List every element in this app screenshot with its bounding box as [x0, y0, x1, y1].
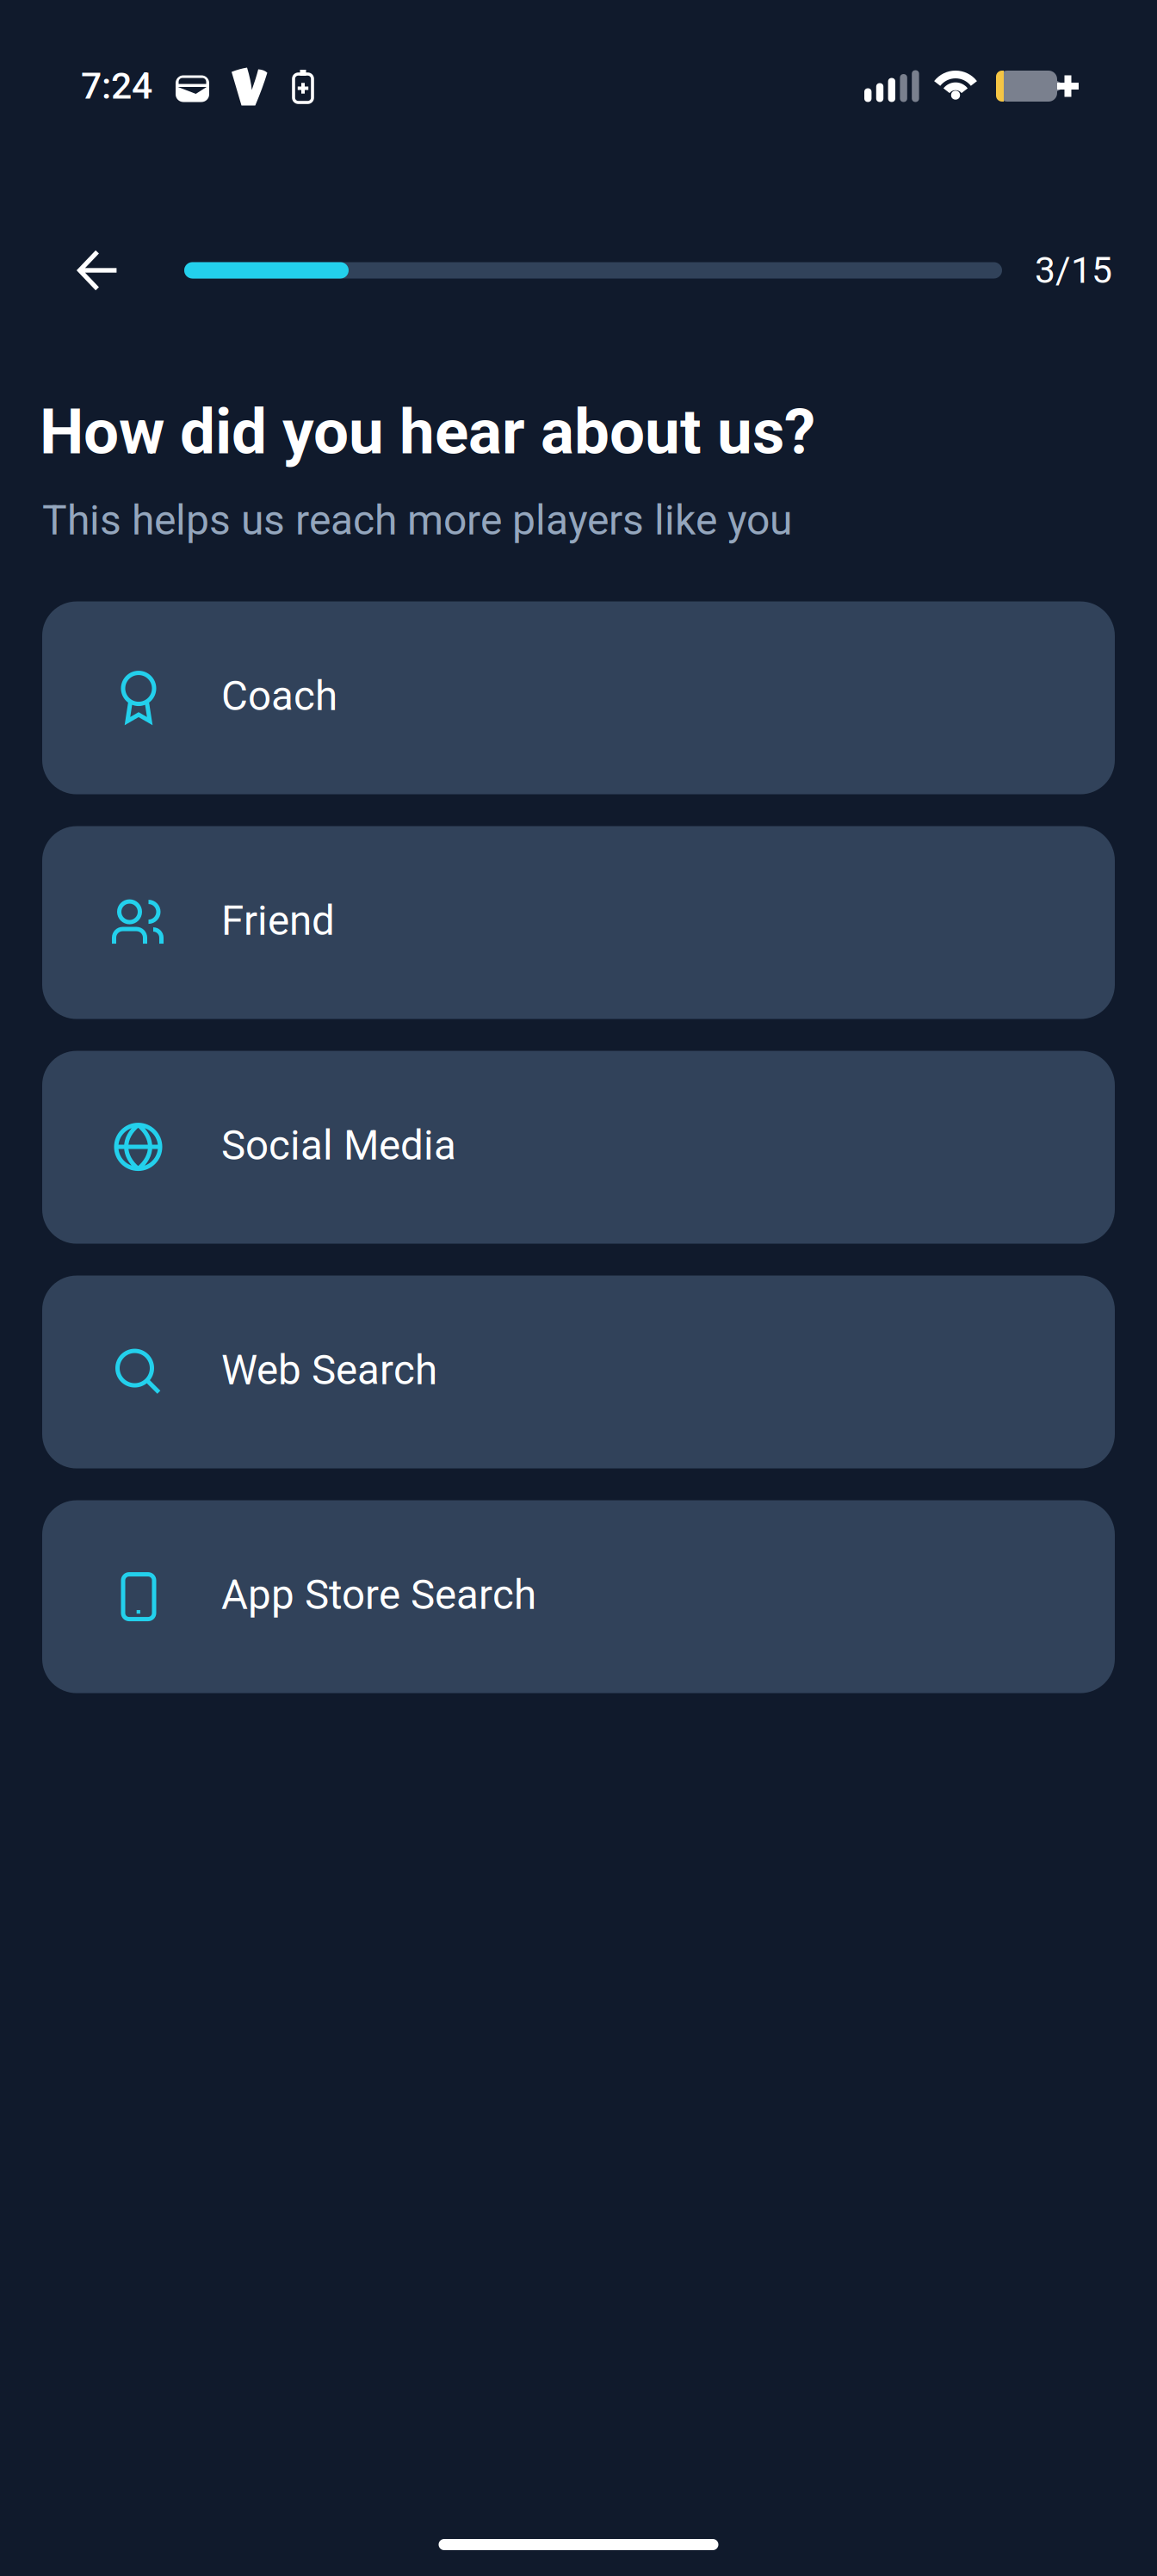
staticText: Social Media — [221, 1122, 456, 1170]
staticText: 7:24 — [81, 65, 152, 108]
staticText: 3/15 — [1035, 249, 1112, 292]
staticText: Web Search — [221, 1346, 437, 1394]
button[interactable]: Web Search — [42, 1276, 1115, 1468]
staticText: Friend — [221, 897, 335, 945]
button[interactable]: Back — [65, 238, 131, 303]
staticText: How did you hear about us? — [40, 395, 815, 469]
button[interactable]: Social Media — [42, 1051, 1115, 1244]
button[interactable]: Friend — [42, 826, 1115, 1019]
button[interactable]: Coach — [42, 601, 1115, 794]
staticText: App Store Search — [221, 1571, 536, 1619]
staticText: This helps us reach more players like yo… — [42, 496, 792, 545]
staticText: Coach — [221, 672, 337, 720]
button[interactable]: App Store Search — [42, 1500, 1115, 1693]
